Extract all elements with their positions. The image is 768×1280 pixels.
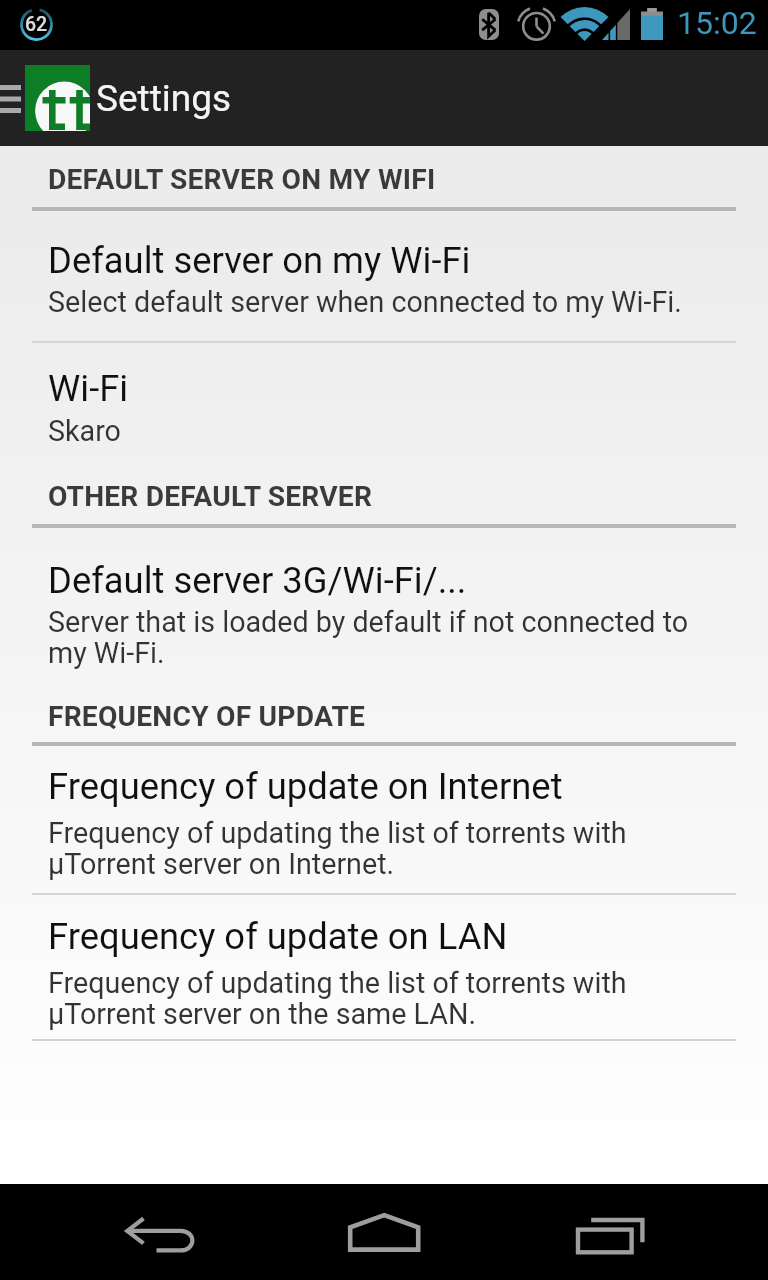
staticText: Server that is loaded by default if not … <box>48 605 689 670</box>
staticText: FREQUENCY OF UPDATE <box>48 702 366 732</box>
button[interactable]: Home <box>336 1204 432 1260</box>
staticText: Frequency of update on LAN <box>48 916 508 958</box>
staticText: Select default server when connected to … <box>48 285 682 319</box>
button[interactable]: Back <box>112 1204 208 1260</box>
button[interactable]: Default server on my Wi-Fi <box>0 211 768 341</box>
staticText: 62 <box>25 13 48 36</box>
staticText: Frequency of updating the list of torren… <box>48 816 627 881</box>
staticText: Default server on my Wi-Fi <box>48 240 471 282</box>
staticText: Wi-Fi <box>48 368 129 410</box>
button[interactable]: Recent apps <box>560 1204 656 1260</box>
staticText: Default server 3G/Wi-Fi/... <box>48 560 467 602</box>
staticText: DEFAULT SERVER ON MY WIFI <box>48 165 436 195</box>
button[interactable]: Default server 3G/Wi-Fi/... <box>0 528 768 682</box>
staticText: Frequency of updating the list of torren… <box>48 966 627 1031</box>
staticText: 15:02 <box>677 4 757 42</box>
staticText: Settings <box>96 77 232 120</box>
button[interactable]: App logo <box>25 65 90 131</box>
staticText: Skaro <box>48 414 121 448</box>
button[interactable]: Frequency of update on LAN <box>0 895 768 1039</box>
staticText: OTHER DEFAULT SERVER <box>48 482 373 512</box>
button[interactable]: Open navigation menu <box>0 74 21 122</box>
button[interactable]: Wi-Fi <box>0 343 768 457</box>
staticText: Frequency of update on Internet <box>48 766 563 808</box>
button[interactable]: Frequency of update on Internet <box>0 746 768 893</box>
